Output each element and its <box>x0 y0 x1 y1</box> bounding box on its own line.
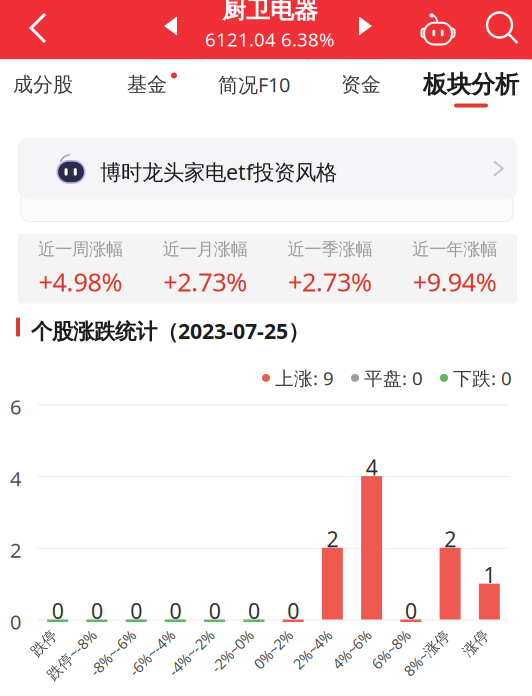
staticText: 0 <box>405 596 417 625</box>
staticText: 0 <box>10 608 21 635</box>
staticText: 上涨: 9 <box>275 365 334 390</box>
staticText: -8%~-6% <box>93 665 151 685</box>
staticText: 0 <box>91 596 103 625</box>
button[interactable]: 博时龙头家电etf投资风格 <box>18 137 517 199</box>
staticText: 跌停~-8% <box>48 665 111 685</box>
staticText: 博时龙头家电etf投资风格 <box>100 157 337 186</box>
staticText: 0%~2% <box>260 665 308 685</box>
staticText: 2 <box>10 537 21 563</box>
button[interactable]: Next sector <box>346 0 386 59</box>
staticText: 资金 <box>341 72 381 97</box>
staticText: 0 <box>209 596 221 625</box>
staticText: 6121.04 6.38% <box>205 27 335 52</box>
staticText: 0 <box>248 596 260 625</box>
staticText: 2 <box>326 525 338 553</box>
staticText: 1 <box>483 561 495 589</box>
staticText: 4%~6% <box>338 665 386 685</box>
staticText: -4%~-2% <box>171 665 229 685</box>
staticText: 0 <box>130 596 142 625</box>
staticText: 8%~涨停 <box>407 665 465 685</box>
staticText: 成分股 <box>13 72 73 97</box>
staticText: 个股涨跌统计（2023-07-25） <box>31 316 309 345</box>
staticText: 0 <box>169 596 181 625</box>
staticText: +9.94% <box>413 265 497 298</box>
staticText: 厨卫电器 <box>222 0 318 25</box>
staticText: 板块分析 <box>423 70 519 99</box>
staticText: +2.73% <box>163 265 247 298</box>
staticText: +4.98% <box>38 265 122 298</box>
button[interactable]: 资金 <box>309 59 413 115</box>
staticText: 近一月涨幅 <box>163 238 248 260</box>
staticText: 基金 <box>127 72 167 97</box>
staticText: 0 <box>287 596 299 625</box>
staticText: -2%~0% <box>215 665 268 685</box>
staticText: 简况F10 <box>218 71 290 98</box>
staticText: -6%~-4% <box>132 665 190 685</box>
button[interactable]: 板块分析 <box>419 59 523 115</box>
staticText: 2%~4% <box>299 665 347 685</box>
staticText: 6%~8% <box>377 665 425 685</box>
button[interactable]: Search <box>487 0 532 59</box>
staticText: 2 <box>444 525 456 553</box>
button[interactable]: Back <box>10 0 66 59</box>
staticText: 近一年涨幅 <box>412 238 497 260</box>
staticText: 近一周涨幅 <box>38 238 123 260</box>
staticText: +2.73% <box>288 265 372 298</box>
button[interactable]: Previous sector <box>151 0 191 59</box>
staticText: 近一季涨幅 <box>287 238 372 260</box>
button[interactable]: 成分股 <box>0 59 95 115</box>
staticText: 4 <box>366 453 378 481</box>
staticText: 跌停 <box>42 666 72 684</box>
button[interactable]: AI assistant <box>414 0 462 59</box>
staticText: 4 <box>10 465 21 492</box>
button[interactable]: 基金 <box>95 59 199 115</box>
staticText: 6 <box>10 393 21 420</box>
staticText: 下跌: 0 <box>453 365 512 390</box>
staticText: 平盘: 0 <box>364 365 423 390</box>
staticText: 0 <box>52 596 64 625</box>
button[interactable]: 简况F10 <box>202 59 306 115</box>
